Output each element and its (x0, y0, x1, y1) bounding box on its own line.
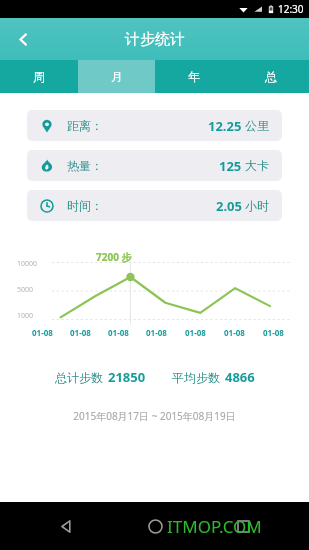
staticText: 125 (219, 157, 242, 175)
staticText: 01-08 (70, 327, 91, 338)
staticText: 21850 (108, 368, 146, 386)
button[interactable]: 时间： (27, 190, 282, 221)
button[interactable]: Recent apps (221, 504, 265, 548)
staticText: 总计步数 (55, 370, 103, 385)
button[interactable]: Back (6, 22, 40, 56)
button[interactable]: 距离： (27, 110, 282, 141)
staticText: 大卡 (245, 158, 269, 173)
staticText: 平均步数 (172, 370, 220, 385)
staticText: 4866 (225, 368, 255, 386)
button[interactable]: 总 (232, 60, 309, 93)
staticText: 10000 (17, 259, 38, 269)
staticText: 01-08 (32, 327, 53, 338)
staticText: 12:30 (278, 2, 304, 16)
staticText: 周 (33, 69, 45, 84)
staticText: 时间： (67, 198, 103, 213)
button[interactable]: 年 (155, 60, 232, 93)
staticText: 计步统计 (125, 30, 185, 49)
staticText: 距离： (67, 118, 103, 133)
staticText: 01-08 (146, 327, 167, 338)
staticText: 5000 (17, 285, 34, 295)
staticText: 月 (111, 69, 123, 84)
staticText: 2.05 (216, 197, 242, 215)
staticText: 12.25 (208, 117, 242, 135)
staticText: 总 (265, 69, 277, 84)
button[interactable]: Back (44, 504, 88, 548)
staticText: ITMOP.COM (167, 515, 262, 538)
button[interactable]: 10000 (10, 235, 299, 347)
staticText: 01-08 (224, 327, 245, 338)
staticText: 7200 步 (96, 250, 132, 264)
staticText: 公里 (245, 118, 269, 133)
button[interactable]: 总计步数 (10, 360, 299, 394)
staticText: 01-08 (263, 327, 284, 338)
staticText: 热量： (67, 158, 103, 173)
staticText: 2015年08月17日 ~ 2015年08月19日 (0, 409, 309, 423)
staticText: 年 (188, 69, 200, 84)
button[interactable]: 月 (78, 60, 155, 93)
staticText: 01-08 (108, 327, 129, 338)
staticText: 01-08 (185, 327, 206, 338)
button[interactable]: 周 (0, 60, 78, 93)
staticText: 小时 (245, 198, 269, 213)
button[interactable]: Home (133, 504, 177, 548)
staticText: 1000 (17, 311, 34, 321)
button[interactable]: 热量： (27, 150, 282, 181)
